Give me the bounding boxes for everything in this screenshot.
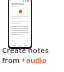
staticText: Create notes bbox=[2, 45, 49, 55]
staticText: from bbox=[2, 55, 22, 65]
button[interactable]: App preview on phone bbox=[8, 0, 32, 49]
staticText: audio bbox=[26, 55, 47, 65]
